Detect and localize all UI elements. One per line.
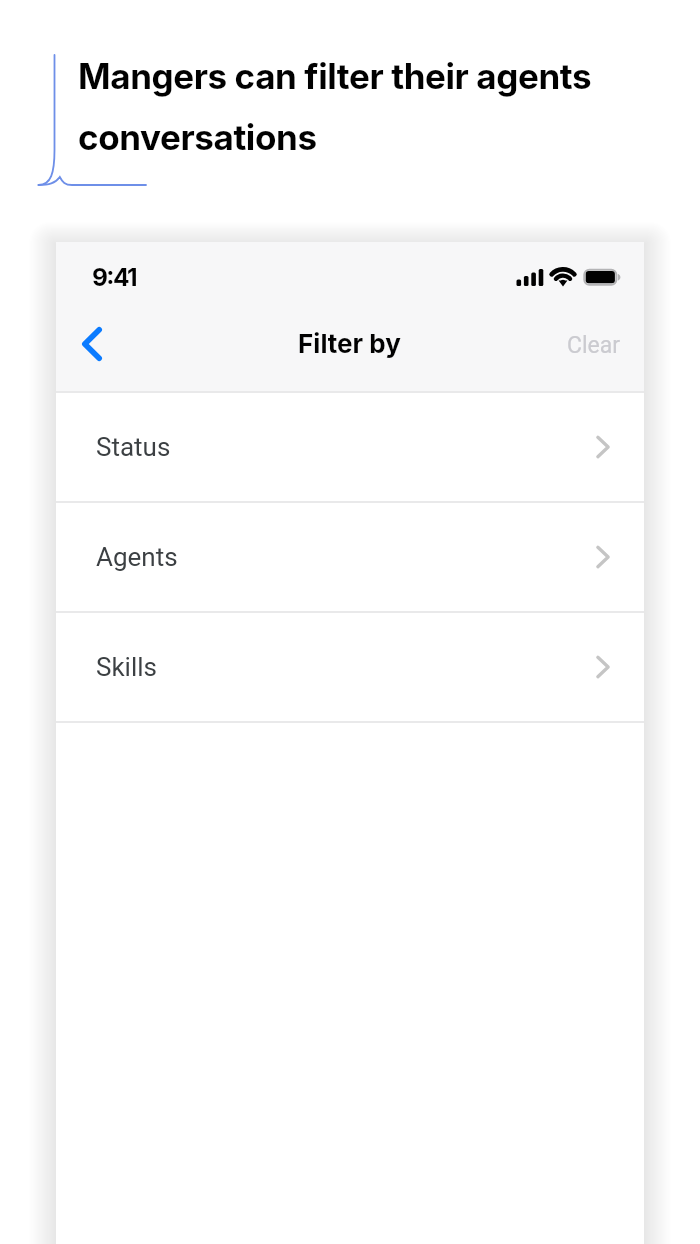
button[interactable]: Status xyxy=(56,393,644,501)
button[interactable]: Agents xyxy=(56,503,644,611)
staticText: Status xyxy=(96,432,171,462)
staticText: Clear xyxy=(567,332,621,359)
staticText: Filter by xyxy=(298,328,401,359)
staticText: Skills xyxy=(96,652,158,682)
staticText: 9:41 xyxy=(92,262,136,292)
button[interactable]: Skills xyxy=(56,613,644,721)
button[interactable]: Back xyxy=(64,322,120,378)
button[interactable]: Clear xyxy=(545,317,644,373)
staticText: Mangers can filter their agents conversa… xyxy=(78,40,592,162)
staticText: Agents xyxy=(96,542,178,572)
